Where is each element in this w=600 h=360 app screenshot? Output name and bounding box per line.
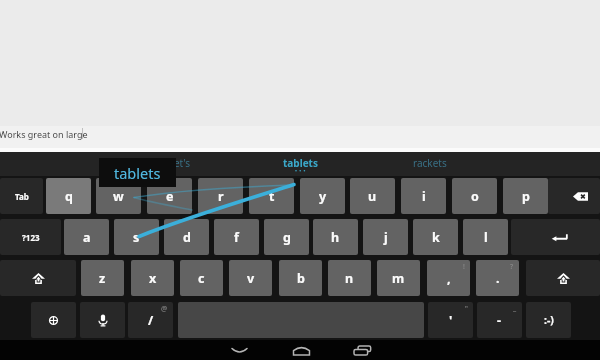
button[interactable]: k — [413, 219, 458, 255]
button[interactable]: p — [503, 178, 548, 214]
button[interactable]: m — [377, 260, 420, 296]
staticText: y — [319, 188, 327, 205]
staticText: x — [149, 270, 157, 287]
button[interactable]: tablets — [260, 152, 340, 174]
staticText: r — [218, 188, 224, 205]
button[interactable]: o — [452, 178, 497, 214]
button[interactable]: Home — [273, 341, 329, 360]
button[interactable]: . — [476, 260, 519, 296]
staticText: h — [331, 229, 340, 246]
staticText: g — [283, 229, 291, 246]
staticText: a — [83, 229, 91, 246]
staticText: . — [496, 270, 500, 287]
staticText: q — [65, 188, 73, 205]
button[interactable]: Recent apps — [334, 341, 390, 360]
button[interactable]: l — [463, 219, 508, 255]
button[interactable]: e — [147, 178, 192, 214]
button[interactable]: Shift — [526, 260, 600, 296]
button[interactable]: tablets — [99, 158, 176, 187]
staticText: t — [269, 188, 275, 205]
staticText: o — [471, 188, 479, 205]
button[interactable]: h — [313, 219, 358, 255]
button[interactable]: :-) — [526, 302, 571, 338]
button[interactable]: Voice input — [80, 302, 125, 338]
staticText: j — [384, 229, 388, 246]
button[interactable]: c — [180, 260, 223, 296]
staticText: rackets — [413, 156, 447, 170]
button[interactable]: - — [477, 302, 522, 338]
button[interactable]: / — [128, 302, 173, 338]
button[interactable]: Hide keyboard — [211, 341, 267, 360]
staticText: l — [484, 229, 488, 246]
staticText: / — [148, 312, 154, 329]
staticText: ! — [463, 262, 465, 272]
staticText: m — [392, 270, 405, 287]
staticText: " — [465, 304, 468, 314]
staticText: z — [99, 270, 106, 287]
staticText: @ — [161, 304, 168, 314]
button[interactable]: t — [249, 178, 294, 214]
staticText: i — [422, 188, 426, 205]
button[interactable]: w — [96, 178, 141, 214]
staticText: tablet's — [156, 156, 191, 170]
button[interactable]: u — [350, 178, 395, 214]
button[interactable]: v — [229, 260, 272, 296]
staticText: ?123 — [22, 232, 40, 243]
staticText: :-) — [544, 313, 554, 327]
button[interactable]: i — [401, 178, 446, 214]
button[interactable]: Backspace — [548, 178, 600, 214]
button[interactable]: b — [279, 260, 322, 296]
staticText: b — [297, 270, 305, 287]
button[interactable]: , — [427, 260, 470, 296]
button[interactable]: Enter — [511, 219, 600, 255]
staticText: ? — [510, 262, 514, 272]
staticText: v — [247, 270, 255, 287]
staticText: c — [198, 270, 205, 287]
button[interactable]: q — [46, 178, 91, 214]
staticText: Works great on large — [0, 128, 88, 140]
staticText: u — [368, 188, 377, 205]
staticText: f — [234, 229, 239, 246]
button[interactable]: z — [81, 260, 124, 296]
staticText: k — [432, 229, 440, 246]
button[interactable]: y — [300, 178, 345, 214]
button[interactable]: s — [114, 219, 159, 255]
button[interactable]: ?123 — [0, 219, 61, 255]
button[interactable]: r — [198, 178, 243, 214]
button[interactable]: a — [64, 219, 109, 255]
button[interactable]: ' — [428, 302, 473, 338]
button[interactable]: Change language — [31, 302, 76, 338]
button[interactable]: x — [131, 260, 174, 296]
staticText: - — [497, 312, 502, 329]
button[interactable]: d — [164, 219, 209, 255]
button[interactable]: rackets — [390, 152, 470, 174]
staticText: tablets — [114, 163, 161, 183]
staticText: _ — [513, 304, 517, 314]
staticText: p — [522, 188, 530, 205]
button[interactable]: f — [214, 219, 259, 255]
button[interactable]: g — [264, 219, 309, 255]
staticText: , — [447, 270, 451, 287]
button[interactable]: n — [328, 260, 371, 296]
staticText: s — [133, 229, 140, 246]
button[interactable]: Shift — [0, 260, 76, 296]
staticText: d — [183, 229, 191, 246]
staticText: tablets — [283, 156, 318, 170]
staticText: w — [113, 188, 124, 205]
staticText: Tab — [15, 191, 29, 202]
button[interactable]: Tab — [0, 178, 43, 214]
button[interactable]: j — [363, 219, 408, 255]
staticText: n — [345, 270, 354, 287]
staticText: ' — [449, 312, 453, 329]
button[interactable]: tablet's — [133, 152, 213, 174]
staticText: e — [166, 188, 174, 205]
